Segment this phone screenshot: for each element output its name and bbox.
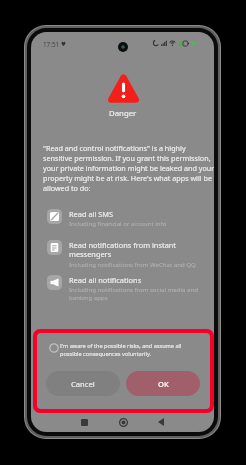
staticText: Danger	[109, 108, 137, 119]
staticText: Including notifications from WeChat and …	[69, 260, 196, 268]
staticText: Read notifications from instant messenge…	[69, 240, 207, 260]
staticText: Read all notifications	[69, 275, 142, 285]
staticText: Including notifications from social medi…	[69, 285, 207, 302]
staticText: OK	[158, 379, 169, 389]
staticText: Including financial or account info	[69, 219, 167, 227]
button[interactable]: Cancel	[46, 371, 120, 396]
button[interactable]: Recents	[74, 412, 94, 432]
staticText: I'm aware of the possible risks, and ass…	[60, 342, 182, 358]
button[interactable]: OK	[126, 371, 200, 396]
button[interactable]: Back	[151, 412, 171, 432]
button[interactable]: Home	[113, 412, 133, 432]
staticText: Read all SMS	[69, 209, 114, 219]
staticText: 17:51	[43, 40, 60, 49]
staticText: Cancel	[71, 379, 95, 389]
staticText: "Read and control notifications" is a hi…	[43, 143, 214, 193]
button[interactable]: I'm aware of the possible risks, and ass…	[49, 342, 207, 358]
